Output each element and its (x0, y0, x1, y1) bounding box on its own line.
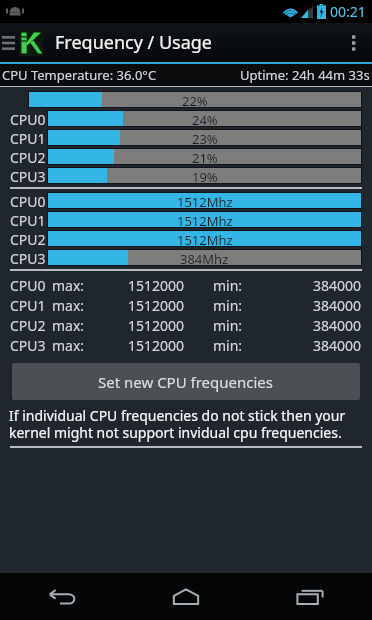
staticText: CPU3 (10, 336, 46, 355)
button[interactable]: Home (124, 573, 248, 620)
staticText: CPU3 (10, 167, 46, 184)
staticText: CPU0 (10, 110, 46, 127)
button[interactable]: Set new CPU frequencies (12, 363, 360, 400)
staticText: CPU0 (10, 192, 46, 209)
staticText: CPU1 (10, 211, 46, 228)
staticText: CPU2 (10, 230, 46, 247)
staticText: 1512Mhz (177, 212, 233, 227)
staticText: CPU3 (10, 249, 46, 266)
staticText: 19% (192, 168, 218, 183)
staticText: 21% (192, 149, 218, 164)
staticText: 384000 (313, 296, 362, 315)
staticText: CPU Temperature: 36.0°C (2, 66, 157, 84)
staticText: min: (213, 316, 243, 335)
staticText: max: (52, 336, 85, 355)
staticText: min: (213, 276, 243, 295)
button[interactable]: More options (336, 23, 372, 62)
staticText: 384000 (313, 336, 362, 355)
button[interactable]: Back (0, 573, 124, 620)
staticText: If individual CPU frequencies do not sti… (9, 406, 363, 442)
staticText: max: (52, 276, 85, 295)
staticText: min: (213, 336, 243, 355)
staticText: 384000 (313, 316, 362, 335)
staticText: 384000 (313, 276, 362, 295)
staticText: 1512Mhz (177, 231, 233, 246)
staticText: 1512000 (128, 276, 185, 295)
staticText: 1512000 (128, 336, 185, 355)
staticText: 00:21 (330, 2, 366, 21)
staticText: 22% (182, 92, 208, 107)
staticText: 24% (192, 111, 218, 126)
staticText: 23% (192, 130, 218, 145)
staticText: 1512Mhz (177, 193, 233, 208)
staticText: 1512000 (128, 316, 185, 335)
staticText: max: (52, 296, 85, 315)
staticText: CPU2 (10, 316, 46, 335)
staticText: CPU1 (10, 296, 46, 315)
button[interactable]: Open navigation drawer (0, 23, 47, 62)
staticText: min: (213, 296, 243, 315)
staticText: 384Mhz (180, 250, 229, 265)
staticText: max: (52, 316, 85, 335)
staticText: Uptime: 24h 44m 33s (240, 66, 370, 84)
staticText: Set new CPU frequencies (98, 372, 274, 392)
staticText: Frequency / Usage (55, 30, 213, 55)
staticText: CPU2 (10, 148, 46, 165)
staticText: CPU1 (10, 129, 46, 146)
staticText: CPU0 (10, 276, 46, 295)
button[interactable]: Recent apps (248, 573, 372, 620)
staticText: 1512000 (128, 296, 185, 315)
